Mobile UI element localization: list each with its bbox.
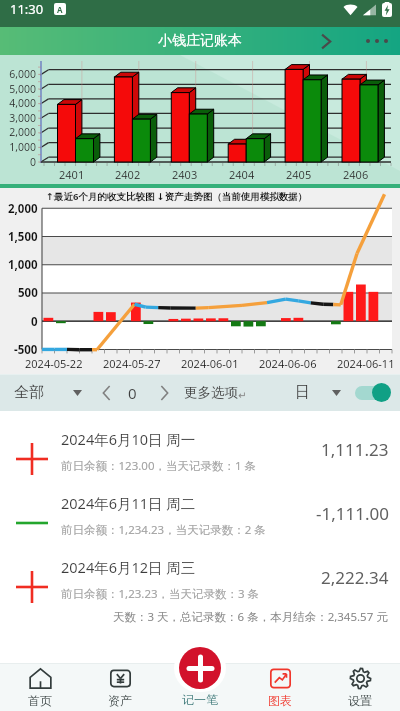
staticText: 2404 bbox=[229, 167, 255, 182]
staticText: 4,000 bbox=[9, 96, 36, 110]
staticText: 3,000 bbox=[9, 111, 36, 125]
staticText: 前日余额：1,234.23，当天记录数：2 条 bbox=[61, 522, 266, 538]
staticText: 2024年6月10日 周一 bbox=[61, 429, 196, 449]
staticText: 2405 bbox=[286, 167, 312, 182]
staticText: 天数：3 天，总记录数：6 条，本月结余：2,345.57 元 bbox=[113, 609, 388, 625]
staticText: 5,000 bbox=[9, 82, 36, 96]
staticText: 2402 bbox=[115, 167, 141, 182]
staticText: 1,500 bbox=[8, 229, 38, 245]
staticText: 2024-06-06 bbox=[259, 356, 317, 371]
staticText: 设置 bbox=[348, 693, 372, 708]
staticText: 1,111.23 bbox=[321, 438, 389, 461]
staticText: 2024年6月11日 周二 bbox=[61, 493, 196, 513]
button[interactable]: 设置 bbox=[320, 663, 400, 711]
staticText: 2401 bbox=[59, 167, 85, 182]
button[interactable]: 2024年6月10日 周一 bbox=[0, 411, 400, 475]
staticText: 11:30 bbox=[10, 0, 44, 18]
staticText: 记一笔 bbox=[182, 692, 218, 707]
staticText: 2024-05-22 bbox=[25, 356, 83, 371]
staticText: 2024-05-27 bbox=[103, 356, 161, 371]
staticText: 图表 bbox=[268, 693, 292, 708]
button[interactable]: 首页 bbox=[0, 663, 80, 711]
staticText: 500 bbox=[18, 285, 38, 301]
staticText: 2024-06-01 bbox=[181, 356, 239, 371]
button[interactable]: Toggle view bbox=[353, 383, 391, 402]
staticText: 0 bbox=[128, 383, 137, 403]
staticText: 1,000 bbox=[9, 140, 36, 154]
staticText: 全部 bbox=[14, 383, 44, 402]
staticText: 资产 bbox=[108, 693, 132, 708]
button[interactable]: Next bbox=[152, 374, 176, 411]
button[interactable]: 图表 bbox=[240, 663, 320, 711]
staticText: 前日余额：1,23.23，当天记录数：3 条 bbox=[61, 586, 260, 602]
staticText: 2,222.34 bbox=[321, 566, 389, 589]
button[interactable]: 记一笔 Add record bbox=[174, 644, 226, 692]
staticText: ↵ bbox=[238, 390, 247, 402]
staticText: 2024年6月12日 周三 bbox=[61, 557, 196, 577]
button[interactable]: 2024年6月11日 周二 bbox=[0, 475, 400, 539]
other: Expand bbox=[319, 33, 333, 50]
staticText: 6,000 bbox=[9, 67, 36, 81]
staticText: 首页 bbox=[28, 693, 52, 708]
button[interactable]: 2024年6月12日 周三 bbox=[0, 539, 400, 603]
staticText: 前日余额：123.00，当天记录数：1 条 bbox=[61, 458, 257, 474]
staticText: 2,000 bbox=[9, 125, 36, 139]
button[interactable]: 全部 bbox=[6, 374, 90, 411]
button[interactable]: 日 bbox=[289, 374, 347, 411]
staticText: ↑最近6个月的收支比较图 ↓资产走势图（当前使用模拟数据） bbox=[46, 190, 308, 203]
staticText: A bbox=[57, 4, 63, 15]
staticText: 日 bbox=[295, 383, 310, 402]
button[interactable]: Previous bbox=[94, 374, 118, 411]
staticText: 2406 bbox=[343, 167, 369, 182]
staticText: 0 bbox=[31, 314, 38, 330]
staticText: 2024-06-11 bbox=[337, 356, 395, 371]
staticText: 小钱庄记账本 bbox=[158, 32, 242, 50]
button[interactable]: 资产 bbox=[80, 663, 160, 711]
staticText: 2,000 bbox=[8, 201, 38, 217]
staticText: 更多选项 bbox=[184, 384, 238, 401]
button[interactable]: 小钱庄记账本 bbox=[0, 27, 400, 55]
staticText: -500 bbox=[14, 342, 38, 358]
button[interactable]: 更多选项 bbox=[182, 374, 248, 411]
staticText: -1,111.00 bbox=[316, 502, 389, 525]
staticText: 0 bbox=[29, 155, 36, 169]
staticText: 2403 bbox=[172, 167, 198, 182]
staticText: 1,000 bbox=[8, 257, 38, 273]
other: More options bbox=[366, 39, 388, 43]
